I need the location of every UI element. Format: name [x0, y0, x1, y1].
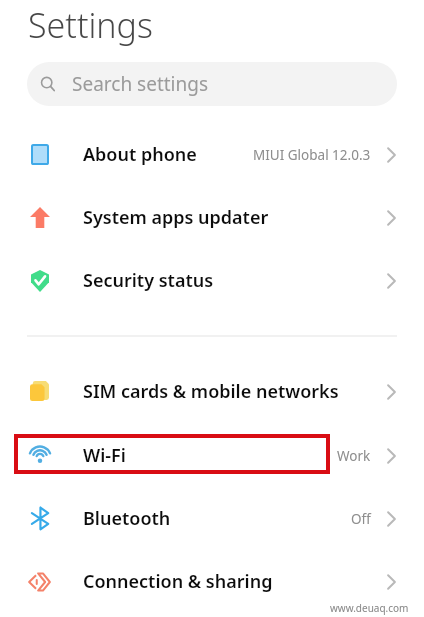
staticText: Search settings: [72, 71, 209, 97]
staticText: Wi-Fi: [83, 443, 126, 468]
button[interactable]: Connection & sharing: [0, 550, 424, 613]
button[interactable]: About phone: [0, 123, 424, 186]
staticText: MIUI Global 12.0.3: [253, 146, 371, 164]
staticText: Bluetooth: [83, 506, 171, 531]
button[interactable]: Bluetooth: [0, 487, 424, 550]
button[interactable]: Security status: [0, 249, 424, 312]
button[interactable]: Wi-Fi: [0, 424, 424, 487]
staticText: Security status: [83, 268, 214, 293]
staticText: Work: [337, 447, 371, 465]
button[interactable]: SIM cards & mobile networks: [0, 360, 424, 423]
staticText: Settings: [28, 2, 153, 48]
staticText: About phone: [83, 142, 197, 167]
button[interactable]: System apps updater: [0, 186, 424, 249]
staticText: System apps updater: [83, 205, 269, 230]
staticText: www.deuaq.com: [330, 601, 409, 615]
staticText: Connection & sharing: [83, 569, 273, 594]
button[interactable]: Search settings: [27, 62, 397, 106]
staticText: SIM cards & mobile networks: [83, 379, 339, 404]
staticText: Off: [351, 510, 371, 528]
